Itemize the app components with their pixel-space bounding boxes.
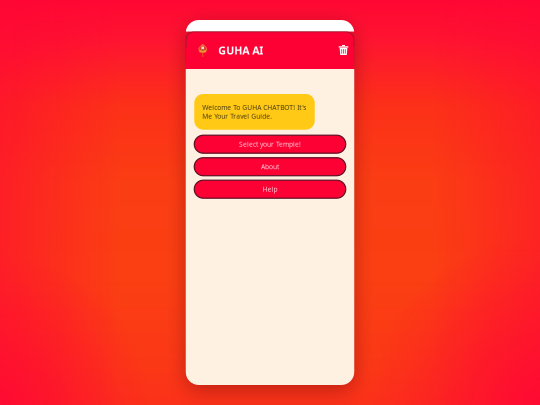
button[interactable]: Clear conversation	[331, 39, 354, 61]
staticText: Select your Temple!	[239, 140, 301, 149]
staticText: About	[261, 162, 279, 171]
staticText: Welcome To GUHA CHATBOT! It's Me Your Tr…	[202, 103, 306, 121]
button[interactable]: Select your Temple!	[194, 135, 346, 153]
staticText: Help	[262, 185, 277, 194]
button[interactable]: Help	[194, 180, 346, 198]
staticText: GUHA AI	[218, 43, 263, 57]
button[interactable]: About	[194, 158, 346, 176]
